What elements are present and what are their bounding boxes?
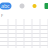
button[interactable]: abc [0,2,11,9]
button[interactable]: Chart [32,4,36,8]
button[interactable]: Add [44,3,48,9]
staticText: abc [1,2,10,10]
staticText: F [1,13,3,18]
